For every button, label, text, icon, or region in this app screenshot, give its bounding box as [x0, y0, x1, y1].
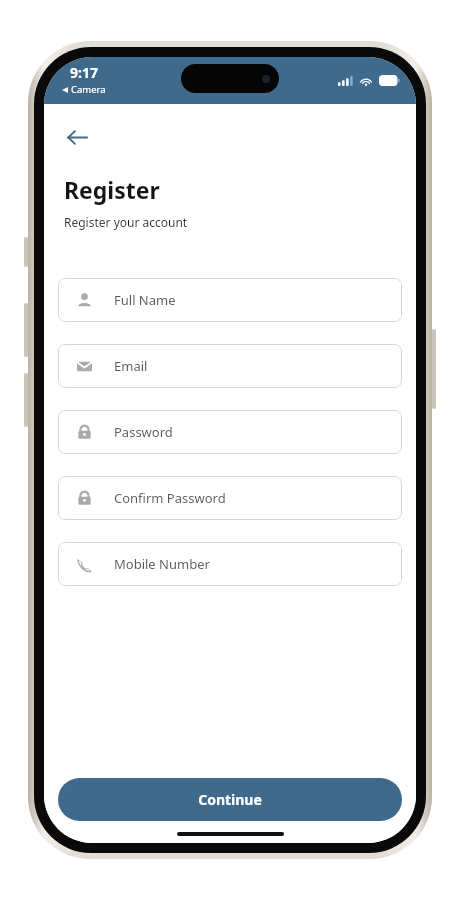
button[interactable]: Mobile Number	[58, 542, 402, 586]
staticText: Email	[114, 357, 148, 375]
staticText: 9:17	[70, 63, 98, 82]
staticText: Confirm Password	[114, 489, 226, 507]
staticText: Continue	[198, 790, 262, 809]
button[interactable]: Password	[58, 410, 402, 454]
button[interactable]: Back	[58, 118, 96, 156]
staticText: Password	[114, 423, 173, 441]
staticText: Camera	[71, 83, 106, 96]
button[interactable]: Confirm Password	[58, 476, 402, 520]
staticText: Register	[64, 174, 160, 205]
button[interactable]: Continue	[58, 778, 402, 821]
button[interactable]: Email	[58, 344, 402, 388]
staticText: Mobile Number	[114, 555, 210, 573]
staticText: Register your account	[64, 214, 188, 230]
button[interactable]: Full Name	[58, 278, 402, 322]
staticText: Full Name	[114, 291, 176, 309]
